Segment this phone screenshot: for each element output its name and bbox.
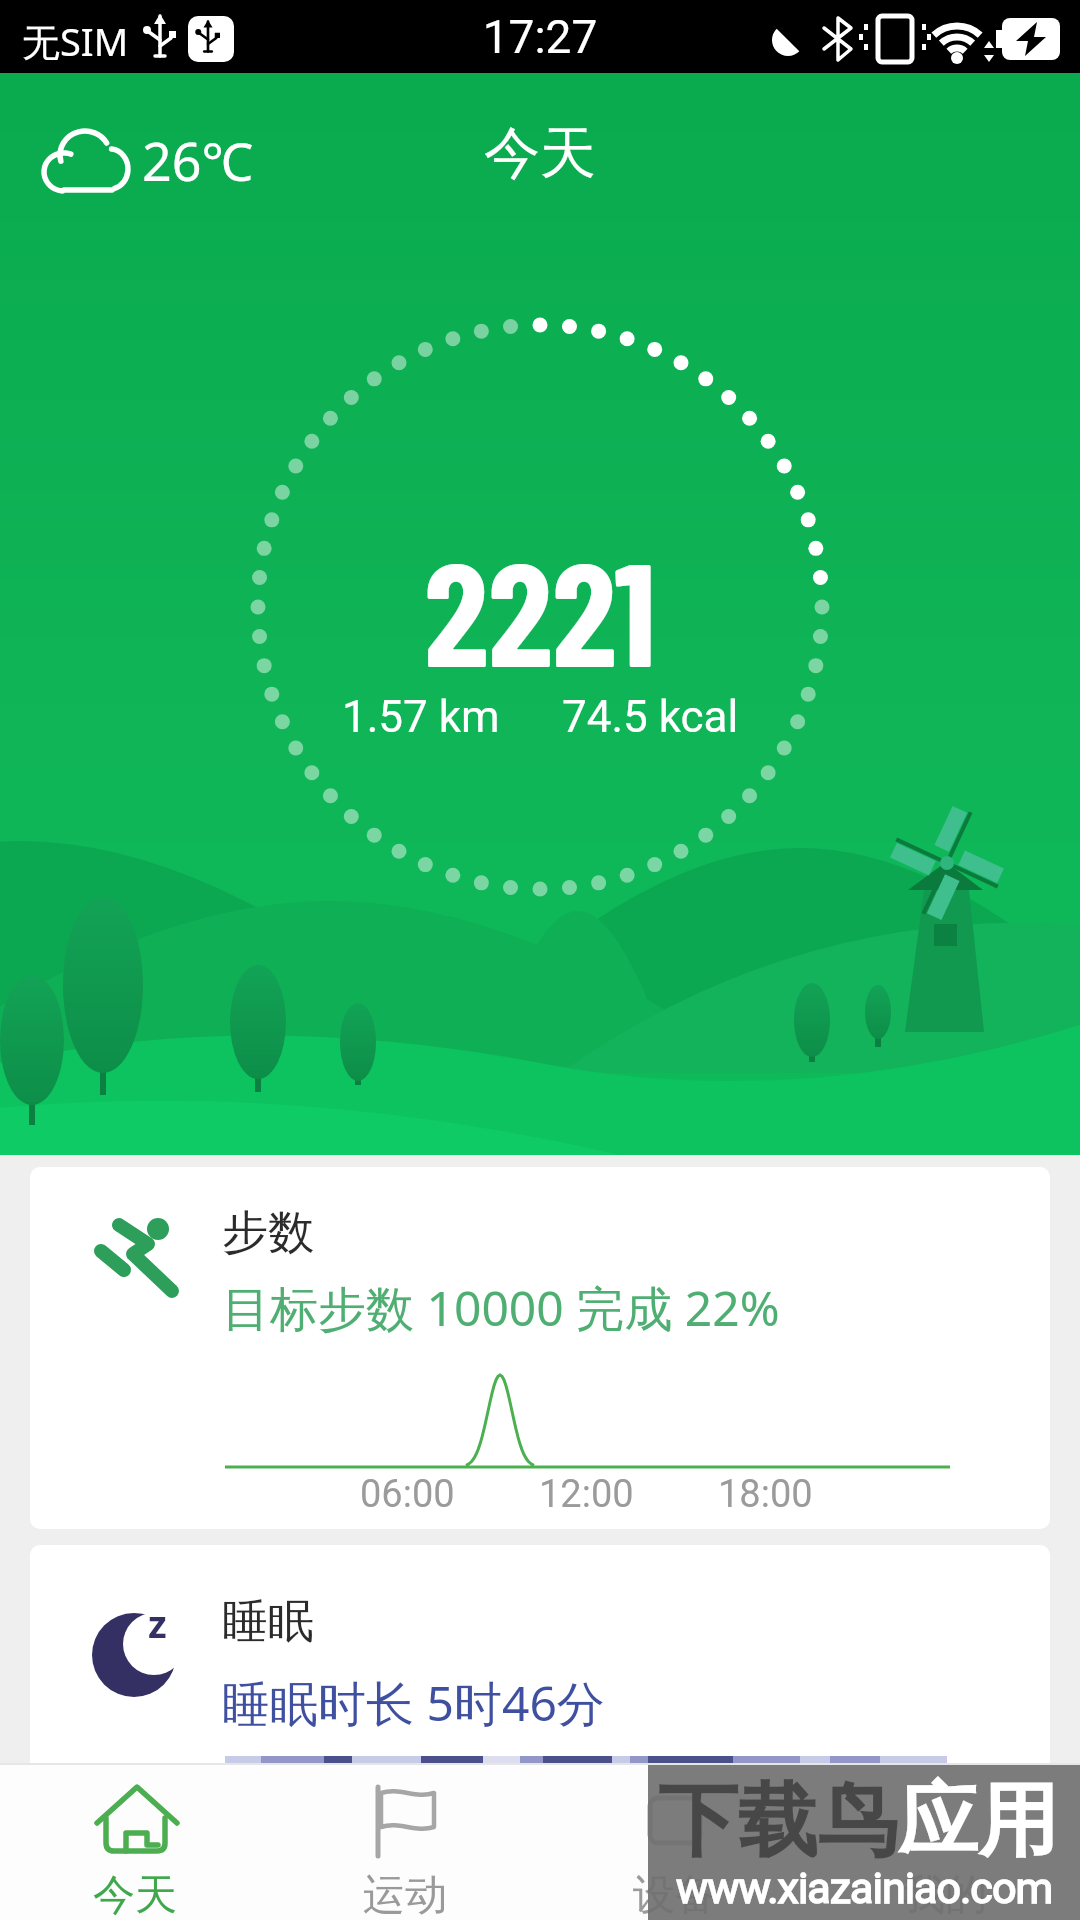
button[interactable]: 今天 <box>0 1869 270 1920</box>
staticText: 17:27 <box>0 10 1080 64</box>
staticText: 目标步数 10000 完成 22% <box>222 1275 780 1341</box>
button[interactable]: 步数 <box>30 1167 1050 1529</box>
staticText: 74.5 kcal <box>562 691 739 743</box>
staticText: 无SIM <box>22 15 129 67</box>
staticText: 应用 <box>898 1771 1058 1872</box>
staticText: 2221 <box>0 521 1080 696</box>
staticText: 今天 <box>93 1869 177 1920</box>
staticText: 我的 <box>903 1869 987 1920</box>
staticText: 设备 <box>633 1869 717 1920</box>
button[interactable]: 26℃ <box>0 73 1080 1155</box>
staticText: 18:00 <box>718 1472 813 1517</box>
staticText: z <box>148 1597 167 1649</box>
staticText: 睡眠 <box>222 1593 314 1651</box>
button[interactable]: z <box>30 1545 1050 1920</box>
staticText: 下载鸟 <box>658 1771 898 1872</box>
staticText: 26℃ <box>142 125 254 196</box>
staticText: 1.57 km <box>342 691 500 743</box>
button[interactable]: 设备 <box>540 1869 810 1920</box>
staticText: www.xiazainiao.com <box>648 1863 1080 1913</box>
button[interactable]: 我的 <box>810 1869 1080 1920</box>
staticText: 运动 <box>363 1869 447 1920</box>
button[interactable]: 运动 <box>270 1869 540 1920</box>
staticText: 06:00 <box>360 1472 455 1517</box>
staticText: 今天 <box>0 118 1080 189</box>
staticText: 12:00 <box>539 1472 634 1517</box>
staticText: 步数 <box>222 1204 314 1262</box>
staticText: 睡眠时长 5时46分 <box>222 1670 605 1736</box>
